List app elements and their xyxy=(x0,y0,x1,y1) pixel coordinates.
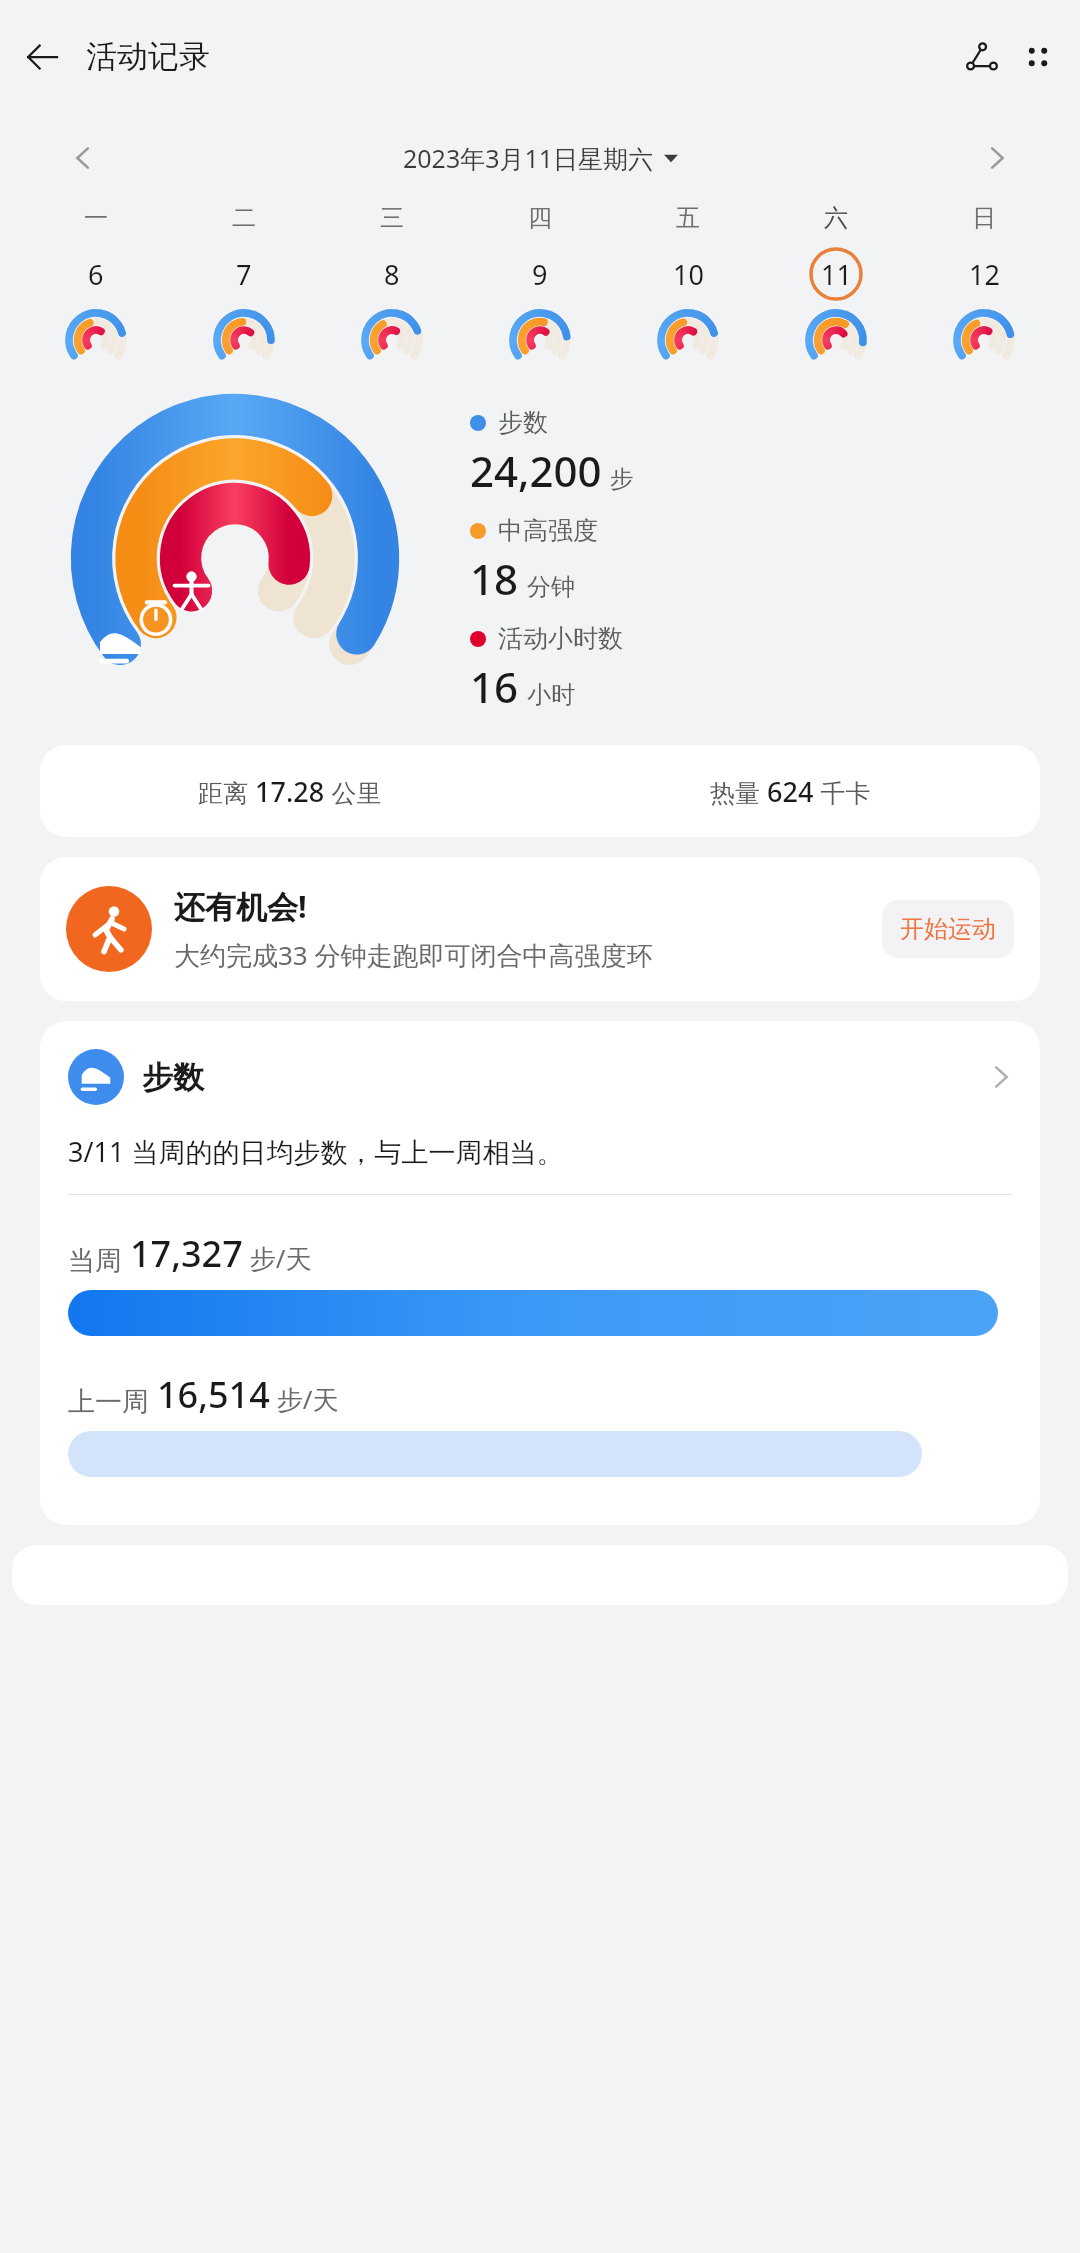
button[interactable]: Back xyxy=(14,29,70,85)
staticText: 步/天 xyxy=(243,1240,312,1276)
staticText: 三 xyxy=(380,203,404,233)
staticText: 17,327 xyxy=(130,1229,243,1278)
staticText: 3/11 当周的的日均步数，与上一周相当。 xyxy=(68,1133,564,1170)
staticText: 12 xyxy=(969,256,1000,293)
staticText: 18 xyxy=(470,550,519,607)
staticText: 上一周 xyxy=(68,1382,157,1419)
staticText: 6 xyxy=(88,256,104,293)
staticText: 24,200 xyxy=(470,442,602,499)
button[interactable]: 三 xyxy=(318,203,466,371)
button[interactable]: 日 xyxy=(910,203,1058,371)
button[interactable]: 还有机会! xyxy=(40,857,1040,1001)
staticText: 步数 xyxy=(142,1058,204,1097)
staticText: 分钟 xyxy=(527,572,575,602)
button[interactable]: 2023年3月11日星期六 xyxy=(395,137,686,179)
staticText: 千卡 xyxy=(814,775,871,809)
staticText: 16,514 xyxy=(157,1370,270,1419)
staticText: 小时 xyxy=(527,680,575,710)
staticText: 17.28 xyxy=(255,773,325,810)
staticText: 624 xyxy=(767,773,814,810)
button[interactable]: 二 xyxy=(170,203,318,371)
button[interactable]: 开始运动 xyxy=(882,900,1014,958)
staticText: 16 xyxy=(470,658,519,715)
staticText: 日 xyxy=(972,203,996,233)
staticText: 公里 xyxy=(325,775,382,809)
staticText: 9 xyxy=(532,256,548,293)
staticText: 一 xyxy=(84,203,108,233)
staticText: 开始运动 xyxy=(900,914,996,944)
staticText: 距离 xyxy=(198,775,255,809)
staticText: 还有机会! xyxy=(174,885,307,927)
button[interactable]: More options xyxy=(1010,29,1066,85)
button[interactable]: 距离 xyxy=(40,745,1040,837)
button[interactable]: 步数 xyxy=(40,1021,1040,1525)
staticText: 步 xyxy=(610,464,634,494)
staticText: 10 xyxy=(673,256,704,293)
staticText: 8 xyxy=(384,256,400,293)
staticText: 中高强度 xyxy=(498,515,598,546)
staticText: 当周 xyxy=(68,1241,130,1278)
button[interactable]: 一 xyxy=(22,203,170,371)
button[interactable]: 五 xyxy=(614,203,762,371)
button[interactable]: Share xyxy=(954,29,1010,85)
staticText: 四 xyxy=(528,203,552,233)
staticText: 大约完成33 分钟走跑即可闭合中高强度环 xyxy=(174,937,653,973)
button[interactable]: Previous day xyxy=(60,135,106,181)
staticText: 热量 xyxy=(710,775,767,809)
staticText: 2023年3月11日星期六 xyxy=(403,141,654,175)
staticText: 六 xyxy=(824,203,848,233)
button[interactable]: 六 xyxy=(762,203,910,371)
staticText: 二 xyxy=(232,203,256,233)
staticText: 活动记录 xyxy=(86,37,210,76)
staticText: 步数 xyxy=(498,407,548,438)
staticText: 五 xyxy=(676,203,700,233)
staticText: 活动小时数 xyxy=(498,623,623,654)
staticText: 7 xyxy=(236,256,252,293)
staticText: 11 xyxy=(821,256,852,293)
button[interactable]: Next day xyxy=(974,135,1020,181)
staticText: 步/天 xyxy=(270,1381,339,1417)
button[interactable]: 四 xyxy=(466,203,614,371)
